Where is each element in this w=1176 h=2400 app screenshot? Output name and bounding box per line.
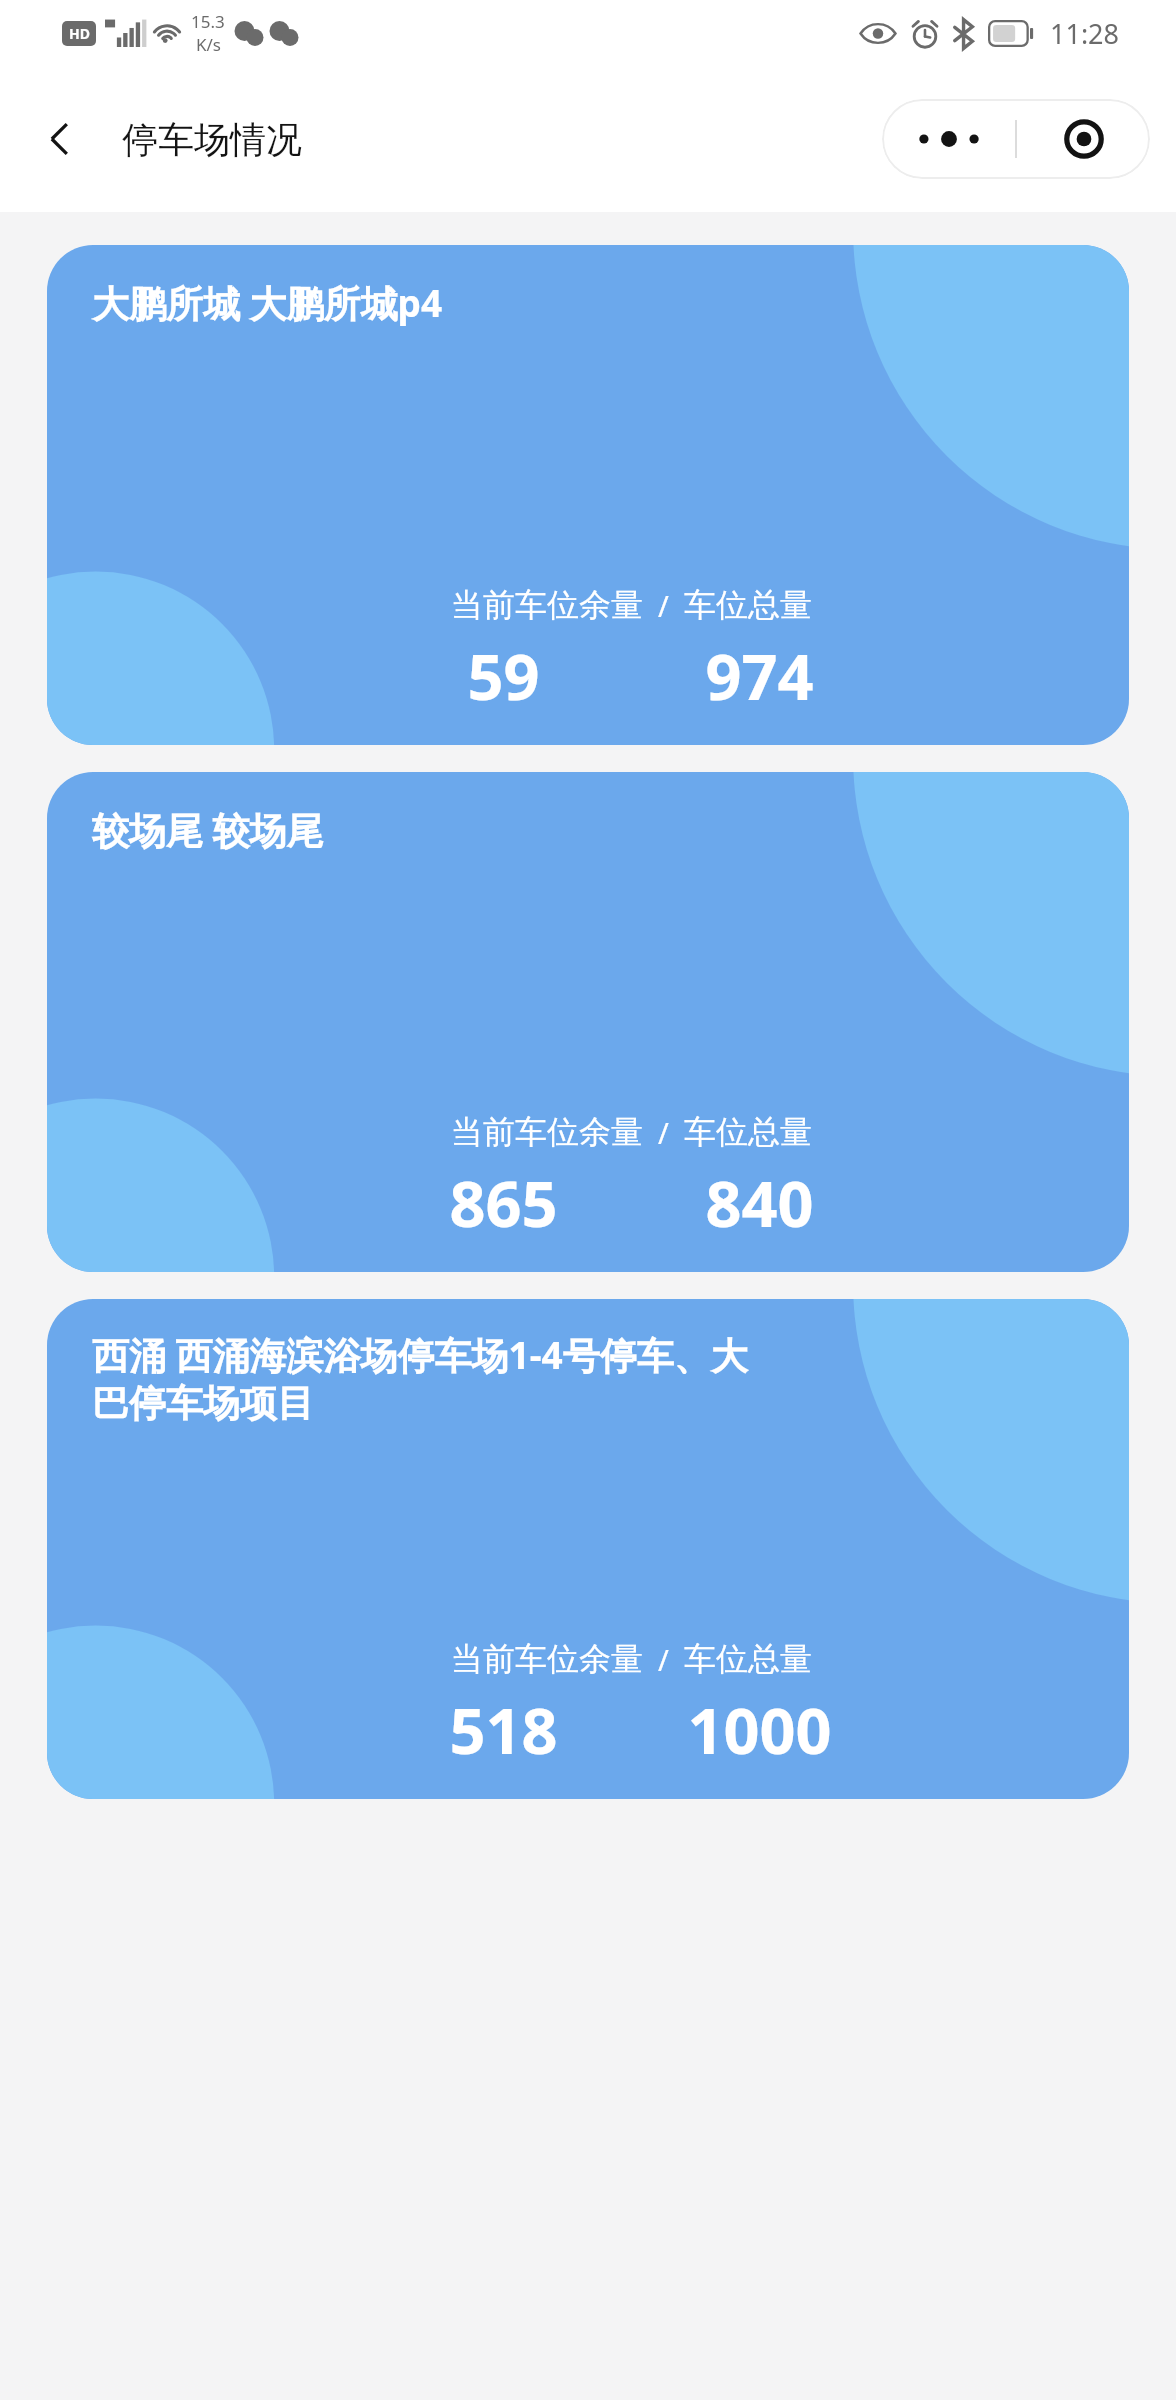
button[interactable]: 较场尾 较场尾 <box>47 772 1129 1272</box>
staticText: 1000 <box>687 1687 832 1773</box>
staticText: 西涌 西涌海滨浴场停车场1-4号停车、大 <box>92 1329 748 1380</box>
staticText: K/s <box>196 33 221 56</box>
staticText: / <box>643 586 684 625</box>
button[interactable]: More options <box>882 99 1015 179</box>
staticText: 停车场情况 <box>122 117 302 162</box>
staticText: 974 <box>705 633 814 719</box>
button[interactable]: 西涌 西涌海滨浴场停车场1-4号停车、大 <box>47 1299 1129 1799</box>
button[interactable]: 大鹏所城 大鹏所城p4 <box>47 245 1129 745</box>
button[interactable]: Exit mini program <box>1017 99 1150 179</box>
staticText: 当前车位余量 <box>451 585 643 625</box>
staticText: 车位总量 <box>684 585 812 625</box>
staticText: 巴停车场项目 <box>92 1380 314 1427</box>
staticText: 车位总量 <box>684 1112 812 1152</box>
staticText: 车位总量 <box>684 1639 812 1679</box>
staticText: 518 <box>449 1687 558 1773</box>
button[interactable]: Back <box>22 101 98 177</box>
staticText: 当前车位余量 <box>451 1639 643 1679</box>
staticText: 15.3 <box>191 10 225 33</box>
staticText: 较场尾 较场尾 <box>92 804 324 855</box>
staticText: 大鹏所城 大鹏所城p4 <box>92 277 443 328</box>
staticText: HD <box>69 24 90 43</box>
staticText: / <box>643 1113 684 1152</box>
staticText: 865 <box>449 1160 558 1246</box>
staticText: 当前车位余量 <box>451 1112 643 1152</box>
staticText: 59 <box>467 633 540 719</box>
staticText: 840 <box>705 1160 814 1246</box>
staticText: / <box>643 1640 684 1679</box>
staticText: 11:28 <box>1050 15 1120 52</box>
